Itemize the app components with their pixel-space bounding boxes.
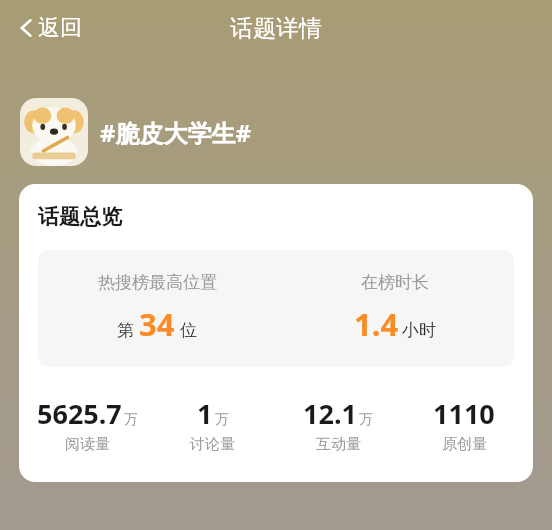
staticText: 互动量 bbox=[316, 435, 361, 454]
staticText: 5625.7 bbox=[37, 395, 122, 432]
button[interactable]: 12.1 bbox=[275, 395, 401, 454]
staticText: 位 bbox=[180, 320, 197, 341]
button[interactable]: #脆皮大学生# bbox=[20, 98, 532, 166]
staticText: #脆皮大学生# bbox=[100, 116, 252, 149]
staticText: 原创量 bbox=[442, 435, 487, 454]
button[interactable]: 热搜榜最高位置 bbox=[38, 272, 276, 345]
staticText: 阅读量 bbox=[65, 435, 110, 454]
button[interactable]: 5625.7 bbox=[25, 395, 150, 454]
button[interactable]: 返回 bbox=[12, 10, 88, 46]
staticText: 万 bbox=[359, 411, 373, 429]
staticText: 1 bbox=[197, 395, 213, 432]
staticText: 万 bbox=[215, 411, 229, 429]
button[interactable]: 1110 bbox=[401, 395, 527, 454]
staticText: 话题详情 bbox=[230, 14, 322, 43]
button[interactable]: 1 bbox=[150, 395, 275, 454]
staticText: 第 bbox=[117, 320, 134, 341]
staticText: 小时 bbox=[402, 320, 436, 341]
staticText: 讨论量 bbox=[190, 435, 235, 454]
staticText: 热搜榜最高位置 bbox=[98, 272, 217, 293]
button[interactable]: 在榜时长 bbox=[276, 272, 514, 345]
staticText: 1110 bbox=[433, 395, 495, 432]
staticText: 万 bbox=[124, 411, 138, 429]
staticText: 返回 bbox=[38, 14, 82, 42]
staticText: 话题总览 bbox=[38, 204, 122, 230]
staticText: 1.4 bbox=[354, 303, 399, 345]
staticText: 在榜时长 bbox=[361, 272, 429, 293]
staticText: 12.1 bbox=[303, 395, 357, 432]
staticText: 34 bbox=[139, 303, 175, 345]
